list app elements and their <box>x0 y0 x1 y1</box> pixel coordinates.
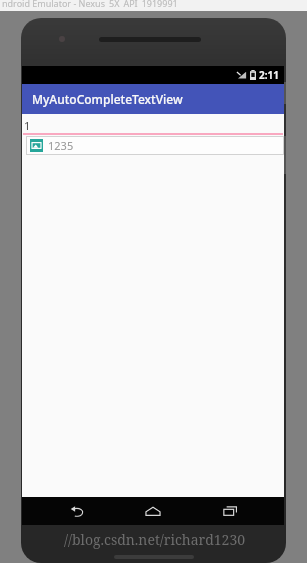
button[interactable]: 1235 <box>26 136 284 155</box>
button[interactable]: 1 <box>22 117 284 135</box>
staticText: //blog.csdn.net/richard1230 <box>27 530 282 549</box>
button[interactable]: Home <box>131 497 175 525</box>
button[interactable]: Recent apps <box>208 497 252 525</box>
staticText: 1235 <box>48 138 74 153</box>
staticText: 2:11 <box>259 68 279 82</box>
staticText: ndroid Emulator - Nexus_5X_API_1919991 <box>2 0 178 8</box>
button[interactable]: Back <box>55 497 99 525</box>
button[interactable]: MyAutoCompleteTextView <box>22 84 284 114</box>
staticText: MyAutoCompleteTextView <box>32 91 183 107</box>
staticText: 1 <box>24 118 31 133</box>
